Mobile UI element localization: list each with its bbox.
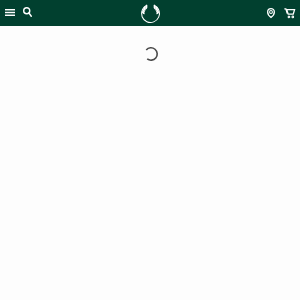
button[interactable]: Search [17,2,37,22]
button[interactable]: Shopping cart [280,4,298,22]
button[interactable]: Home [138,1,162,25]
button[interactable]: Store locator [262,4,280,22]
button[interactable]: Menu [0,2,20,22]
